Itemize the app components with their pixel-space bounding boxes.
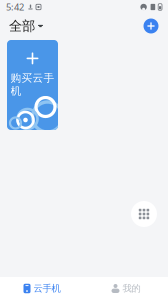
staticText: 购买云手机 [10,71,54,98]
button[interactable]: 全部 [7,14,45,38]
button[interactable]: Add [141,16,161,36]
staticText: 云手机 [33,283,60,294]
staticText: 5:42 [6,1,24,13]
staticText: 全部 [9,18,35,34]
button[interactable]: 云手机 [0,277,84,300]
button[interactable]: 购买云手机 [7,40,58,130]
button[interactable]: Grid view [129,199,159,229]
button[interactable]: 我的 [84,277,168,300]
staticText: 我的 [122,283,140,294]
